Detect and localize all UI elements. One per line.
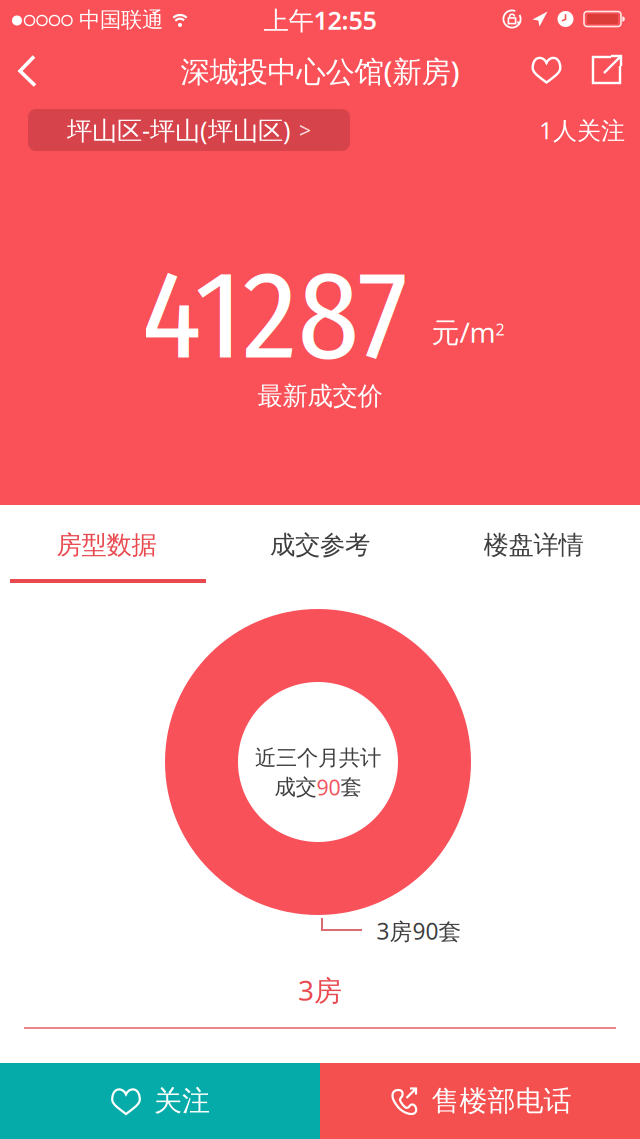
staticText: 上午12:55: [263, 3, 376, 37]
button[interactable]: Share: [591, 54, 623, 86]
button[interactable]: 关注: [0, 1063, 320, 1139]
staticText: >: [299, 116, 311, 144]
staticText: 成交参考: [270, 529, 370, 560]
button[interactable]: Favorite: [530, 54, 563, 85]
staticText: 套: [340, 774, 361, 800]
button[interactable]: Back: [14, 52, 42, 89]
staticText: 近三个月共计: [255, 745, 381, 771]
staticText: 深城投中心公馆(新房): [180, 51, 459, 90]
button[interactable]: 成交参考: [213, 505, 427, 585]
staticText: 坪山区-坪山(坪山区): [67, 113, 291, 147]
staticText: 3房90套: [376, 916, 461, 946]
staticText: 最新成交价: [257, 380, 382, 411]
staticText: 3房: [298, 971, 342, 1009]
staticText: 售楼部电话: [431, 1084, 571, 1118]
staticText: 元/m2: [431, 313, 504, 350]
button[interactable]: 楼盘详情: [427, 505, 640, 585]
button[interactable]: 售楼部电话: [320, 1063, 640, 1139]
button[interactable]: 区域: [28, 109, 350, 151]
staticText: 楼盘详情: [483, 529, 583, 560]
staticText: 关注: [154, 1084, 210, 1118]
staticText: 中国联通: [79, 7, 163, 33]
staticText: 成交: [274, 774, 316, 800]
staticText: 90: [316, 773, 340, 801]
staticText: 41287: [141, 242, 407, 390]
staticText: 房型数据: [56, 529, 156, 560]
staticText: 1人关注: [539, 114, 625, 146]
button[interactable]: 房型数据: [0, 505, 213, 585]
